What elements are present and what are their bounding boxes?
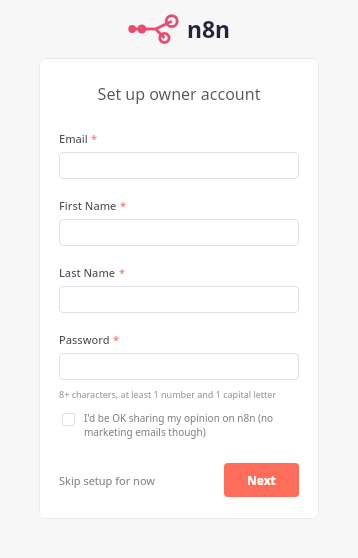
staticText: Skip setup for now (59, 473, 155, 488)
button[interactable]: Next (224, 463, 299, 497)
staticText: Password (59, 332, 110, 347)
staticText: I'd be OK sharing my opinion on n8n (no … (84, 411, 299, 439)
other: n8n logo (127, 14, 179, 44)
button[interactable] (59, 353, 299, 380)
staticText: First Name (59, 198, 117, 213)
button[interactable]: Skip setup for now (59, 473, 155, 488)
staticText: * (120, 198, 127, 213)
staticText: Next (247, 472, 276, 488)
button[interactable]: I'd be OK sharing my opinion on n8n (no … (59, 411, 299, 439)
staticText: * (119, 265, 126, 280)
staticText: 8+ characters, at least 1 number and 1 c… (59, 388, 277, 400)
staticText: n8n (187, 13, 231, 44)
staticText: Last Name (59, 265, 116, 280)
staticText: Set up owner account (59, 83, 299, 105)
staticText: Email (59, 131, 88, 146)
button[interactable] (59, 152, 299, 179)
button[interactable] (59, 286, 299, 313)
staticText: * (91, 131, 98, 146)
button[interactable] (59, 219, 299, 246)
staticText: * (113, 332, 120, 347)
